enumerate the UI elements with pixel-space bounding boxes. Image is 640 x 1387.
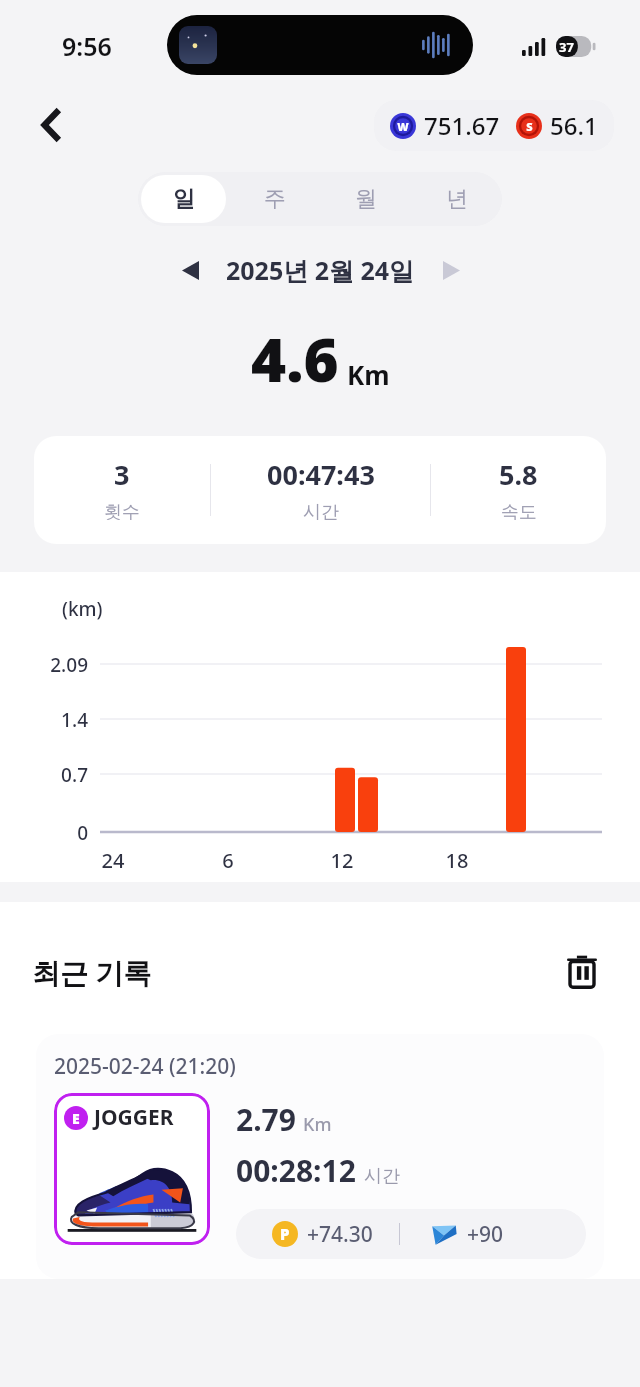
staticText: 0.7 — [16, 762, 88, 788]
staticText: 6 — [203, 847, 253, 874]
staticText: E — [72, 1109, 80, 1128]
staticText: 4.6 — [251, 318, 339, 400]
staticText: 2.79 — [236, 1099, 296, 1140]
staticText: (km) — [62, 596, 103, 622]
button[interactable]: Delete records — [556, 946, 608, 998]
staticText: 24 — [88, 847, 138, 874]
staticText: 최근 기록 — [32, 953, 152, 991]
staticText: 5.8 — [499, 456, 538, 493]
staticText: 0 — [16, 820, 88, 846]
staticText: 12 — [317, 847, 367, 874]
staticText: 월 — [355, 185, 377, 213]
button[interactable]: W — [374, 100, 614, 151]
staticText: 751.67 — [424, 109, 500, 142]
staticText: 1.4 — [16, 707, 88, 733]
staticText: S — [526, 119, 533, 134]
staticText: JOGGER — [94, 1103, 174, 1132]
staticText: 년 — [446, 185, 468, 213]
staticText: 9:56 — [62, 29, 112, 63]
staticText: 2025년 2월 24일 — [226, 253, 415, 287]
staticText: P — [280, 1224, 290, 1244]
staticText: 주 — [264, 185, 286, 213]
button[interactable]: 일 — [141, 175, 226, 223]
button[interactable]: 월 — [323, 175, 408, 223]
staticText: Km — [347, 357, 390, 392]
staticText: 3 — [114, 456, 130, 493]
staticText: +90 — [467, 1220, 504, 1249]
button[interactable]: Back — [26, 99, 78, 151]
staticText: 시간 — [364, 1165, 400, 1188]
staticText: 일 — [173, 185, 195, 213]
button[interactable]: 2025-02-24 (21:20) — [36, 1034, 604, 1279]
staticText: +74.30 — [307, 1220, 373, 1249]
button[interactable]: Previous day — [168, 248, 212, 292]
staticText: 2025-02-24 (21:20) — [54, 1052, 236, 1081]
button[interactable]: 주 — [232, 175, 317, 223]
staticText: 00:28:12 — [236, 1150, 356, 1191]
staticText: 시간 — [303, 501, 339, 524]
staticText: 00:47:43 — [267, 456, 375, 493]
button[interactable]: 년 — [414, 175, 499, 223]
staticText: 2.09 — [16, 652, 88, 678]
staticText: W — [397, 119, 409, 134]
staticText: 속도 — [501, 501, 537, 524]
staticText: Km — [303, 1112, 332, 1137]
staticText: 37 — [559, 38, 574, 56]
button[interactable]: P — [236, 1209, 586, 1259]
staticText: 56.1 — [550, 109, 598, 142]
staticText: 횟수 — [104, 501, 140, 524]
staticText: 18 — [432, 847, 482, 874]
button[interactable]: Next day — [429, 248, 473, 292]
